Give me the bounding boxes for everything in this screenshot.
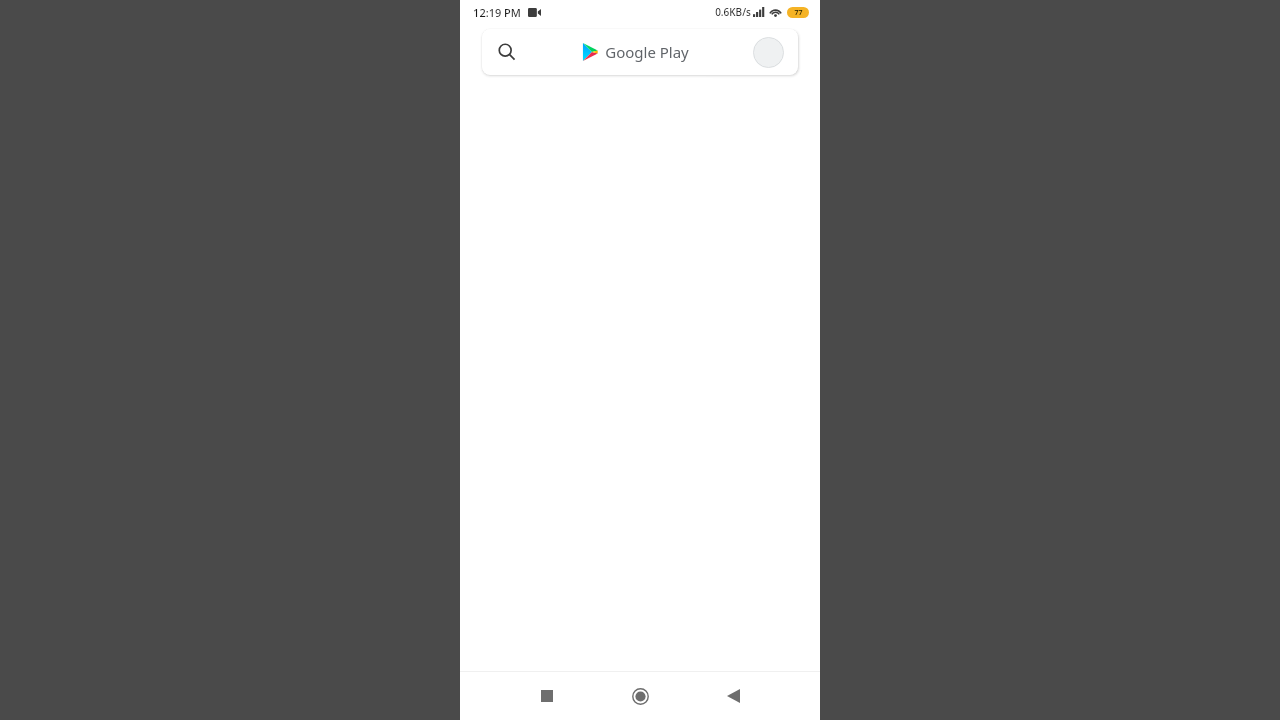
staticText: 12:19 PM: [473, 5, 521, 20]
button[interactable]: Account: [753, 37, 784, 68]
staticText: Google Play: [605, 42, 689, 62]
staticText: 77: [794, 8, 803, 18]
button[interactable]: Recent apps: [525, 674, 569, 718]
button[interactable]: Search: [482, 29, 798, 75]
button[interactable]: Back: [711, 674, 755, 718]
staticText: 0.6KB/s: [715, 5, 751, 19]
button[interactable]: Search: [496, 41, 518, 63]
button[interactable]: Home: [618, 674, 662, 718]
